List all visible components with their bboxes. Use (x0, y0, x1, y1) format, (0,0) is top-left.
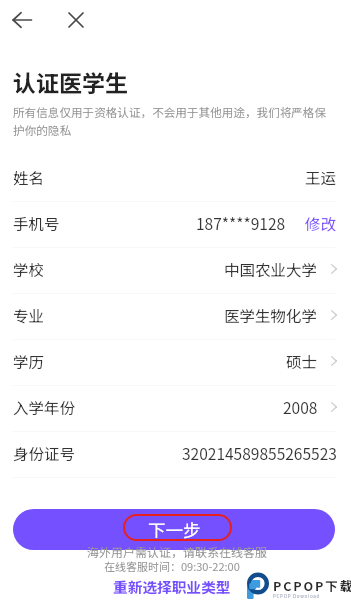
button[interactable]: 修改 (305, 212, 337, 234)
button[interactable]: Close (54, 0, 98, 40)
button[interactable]: 入学年份 (0, 386, 351, 432)
staticText: PCPOP Download (273, 593, 320, 600)
button[interactable]: 下一步 (13, 509, 335, 550)
button[interactable]: 专业 (0, 294, 351, 340)
button[interactable]: 姓名 (0, 156, 351, 202)
staticText: 手机号 (13, 212, 60, 234)
staticText: 专业 (13, 304, 45, 326)
staticText: 下一步 (148, 517, 201, 542)
staticText: 所有信息仅用于资格认证，不会用于其他用途，我们将严格保护你的隐私 (13, 104, 328, 139)
button[interactable]: 身份证号 (0, 432, 351, 478)
staticText: 认证医学生 (13, 65, 128, 98)
button[interactable]: 手机号 (0, 202, 351, 248)
staticText: 中国农业大学 (224, 258, 318, 280)
staticText: 2008 (283, 396, 318, 418)
staticText: 320214589855265523 (182, 442, 337, 464)
staticText: 187****9128 (196, 212, 286, 234)
staticText: 身份证号 (13, 442, 76, 464)
button[interactable]: 学校 (0, 248, 351, 294)
staticText: 学校 (13, 258, 45, 280)
staticText: 王运 (305, 166, 337, 188)
staticText: PCPOP下载 (273, 576, 351, 594)
staticText: 学历 (13, 350, 45, 372)
staticText: 医学生物化学 (224, 304, 318, 326)
staticText: 姓名 (13, 166, 45, 188)
button[interactable]: Back (0, 0, 44, 40)
button[interactable]: 重新选择职业类型 (113, 576, 231, 597)
staticText: 海外用户需认证，请联系在线客服 (87, 543, 268, 560)
button[interactable]: 学历 (0, 340, 351, 386)
staticText: 在线客服时间：09:30-22:00 (104, 558, 240, 574)
staticText: 硕士 (286, 350, 318, 372)
staticText: 入学年份 (13, 396, 76, 418)
